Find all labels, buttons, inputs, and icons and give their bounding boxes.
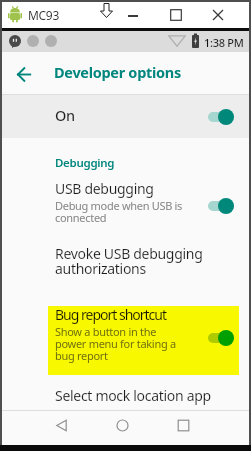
staticText: Bug report shortcut xyxy=(55,305,167,324)
button[interactable] xyxy=(0,95,251,138)
staticText: Show a button in the xyxy=(55,324,157,339)
staticText: Debug mode when USB is xyxy=(55,198,183,213)
button[interactable] xyxy=(218,330,234,346)
staticText: On xyxy=(55,105,75,125)
staticText: power menu for taking a xyxy=(55,336,176,351)
button[interactable] xyxy=(48,306,239,375)
staticText: authorizations xyxy=(55,259,146,278)
button[interactable] xyxy=(218,198,234,214)
staticText: Revoke USB debugging xyxy=(55,244,203,263)
staticText: connected xyxy=(55,210,107,225)
button[interactable] xyxy=(55,419,68,432)
staticText: 1:38 PM xyxy=(204,35,244,50)
button[interactable] xyxy=(177,419,190,432)
button[interactable] xyxy=(116,419,129,432)
button[interactable] xyxy=(0,172,251,234)
button[interactable] xyxy=(0,238,251,286)
staticText: USB debugging xyxy=(55,179,154,198)
staticText: Select mock location app xyxy=(55,386,211,405)
button[interactable] xyxy=(218,109,234,125)
button[interactable] xyxy=(0,380,251,410)
button[interactable] xyxy=(16,66,32,83)
button[interactable] xyxy=(170,9,182,21)
staticText: bug report xyxy=(55,348,108,363)
staticText: MC93 xyxy=(28,7,59,23)
staticText: Debugging xyxy=(55,155,115,171)
staticText: Developer options xyxy=(54,62,181,82)
button[interactable] xyxy=(212,9,224,21)
